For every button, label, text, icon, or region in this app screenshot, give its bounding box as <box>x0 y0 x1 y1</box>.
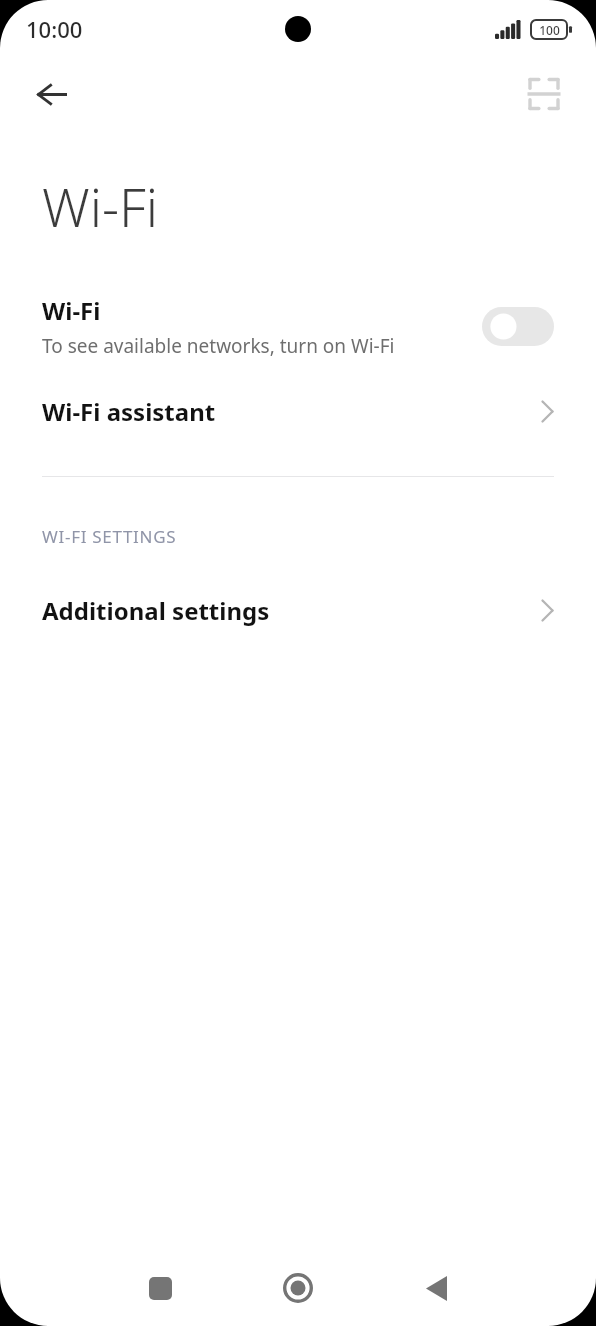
button[interactable]: Home <box>266 1256 330 1320</box>
button[interactable]: Recent apps <box>128 1256 192 1320</box>
staticText: 10:00 <box>26 14 83 44</box>
button[interactable]: Wi-Fi, off <box>482 307 554 346</box>
staticText: Additional settings <box>42 594 541 627</box>
button[interactable]: Back <box>24 66 80 122</box>
staticText: Wi-Fi <box>42 294 101 327</box>
staticText: WI-FI SETTINGS <box>42 525 177 548</box>
button[interactable]: Scan QR code <box>516 66 572 122</box>
staticText: To see available networks, turn on Wi-Fi <box>42 333 395 359</box>
staticText: Wi-Fi <box>42 170 159 242</box>
button[interactable]: Wi-Fi <box>0 290 596 363</box>
button[interactable]: Additional settings <box>0 588 596 633</box>
button[interactable]: Back <box>404 1256 468 1320</box>
button[interactable]: Wi-Fi assistant <box>0 389 596 434</box>
staticText: 100 <box>539 22 560 38</box>
staticText: Wi-Fi assistant <box>42 395 541 428</box>
